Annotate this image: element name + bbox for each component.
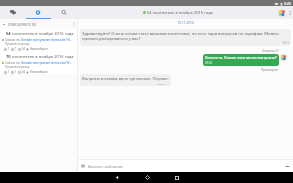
- button[interactable]: Вопросы в самом деле пустячные. Первое:: [80, 74, 171, 86]
- button[interactable]: 70: [0, 52, 77, 74]
- staticText: 34: [21, 70, 25, 74]
- staticText: Вопросы в самом деле пустячные. Первое:: [82, 76, 169, 82]
- button[interactable]: Back: [102, 172, 132, 183]
- staticText: Прямой переход: [5, 42, 30, 46]
- button[interactable]: Chats: [0, 6, 25, 19]
- staticText: Здравствуйте! Очень хотим стать вашими к…: [82, 31, 279, 41]
- button[interactable]: Search: [51, 6, 77, 19]
- staticText: Оператор #1: [262, 49, 279, 53]
- button[interactable]: 54: [0, 29, 77, 51]
- staticText: 54 посетитель в ноябре 2016 года: [147, 10, 213, 15]
- staticText: посетитель в ноябре 2016 года: [12, 54, 74, 60]
- button[interactable]: Operator avatar: [278, 9, 286, 17]
- staticText: посетитель в ноябре 2016 года: [12, 31, 74, 37]
- staticText: 1: [14, 70, 17, 74]
- button[interactable]: Visitors: [25, 6, 51, 19]
- button[interactable]: More options: [289, 11, 291, 15]
- button[interactable]: Здравствуйте! Очень хотим стать вашими к…: [80, 29, 291, 46]
- button[interactable]: Home: [132, 172, 162, 183]
- staticText: 18:14: [205, 61, 212, 65]
- button[interactable]: Конечно. Какие возникли вопросы?: [203, 54, 279, 66]
- staticText: 8:48: [284, 1, 291, 6]
- staticText: Сейчас на: [5, 61, 21, 65]
- staticText: Пишет: [157, 82, 166, 85]
- staticText: Просмотрено: [261, 68, 279, 72]
- staticText: 34: [21, 47, 25, 51]
- staticText: 54: [6, 31, 11, 37]
- staticText: 15.11.2016: [78, 21, 293, 25]
- other: Menu: [81, 164, 85, 168]
- staticText: 1: [7, 47, 10, 51]
- staticText: 1: [7, 70, 10, 74]
- button[interactable]: Menu: [78, 160, 293, 172]
- staticText: Новосибирск: [29, 70, 48, 74]
- staticText: Онлайн консультант demo.site/?V...: [21, 61, 72, 65]
- staticText: 70: [6, 54, 11, 60]
- button[interactable]: Recents: [162, 172, 192, 183]
- staticText: Введите сообщение: [88, 164, 124, 169]
- staticText: DEMO.VERBOX.RU: [8, 22, 37, 26]
- staticText: Онлайн консультант demo.site/?V...: [21, 38, 72, 42]
- button[interactable]: Operator avatar: [280, 54, 287, 61]
- staticText: Сейчас на: [5, 38, 21, 42]
- staticText: Конечно. Какие возникли вопросы?: [205, 55, 277, 61]
- staticText: Прямой переход: [5, 65, 30, 69]
- staticText: 18:13: [82, 41, 289, 45]
- button[interactable]: DEMO.VERBOX.RU: [0, 19, 77, 29]
- staticText: Новосибирск: [29, 47, 48, 51]
- staticText: 1: [14, 47, 17, 51]
